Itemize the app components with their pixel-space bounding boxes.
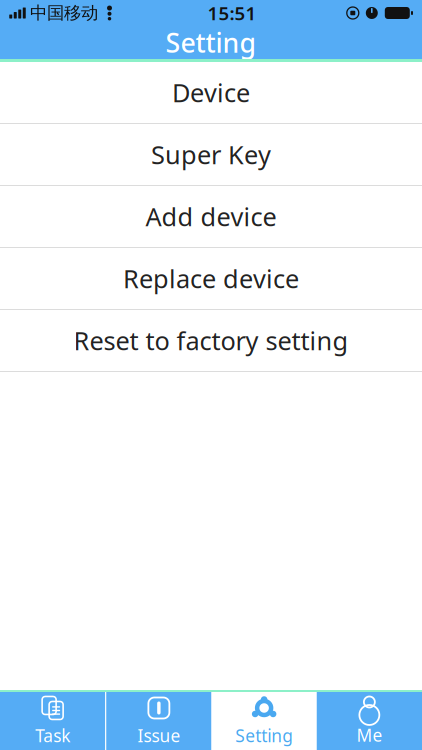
staticText: Replace device (123, 262, 299, 295)
staticText: Reset to factory setting (73, 324, 348, 357)
staticText: Setting (235, 724, 293, 747)
button[interactable]: Replace device (0, 248, 422, 309)
staticText: Issue (137, 724, 180, 747)
button[interactable]: Setting (211, 692, 317, 750)
button[interactable]: Add device (0, 186, 422, 247)
button[interactable]: Task (0, 692, 105, 750)
button[interactable]: Me (317, 692, 422, 750)
staticText: Setting (165, 25, 256, 60)
button[interactable]: Device (0, 62, 422, 123)
button[interactable]: Reset to factory setting (0, 310, 422, 371)
staticText: 中国移动 (30, 2, 98, 24)
staticText: Add device (145, 200, 276, 233)
button[interactable]: Super Key (0, 124, 422, 185)
staticText: Task (35, 724, 70, 747)
staticText: Super Key (151, 138, 271, 171)
button[interactable]: Issue (106, 692, 211, 750)
staticText: Device (172, 76, 250, 109)
staticText: Me (356, 723, 382, 746)
staticText: 15:51 (207, 1, 256, 25)
